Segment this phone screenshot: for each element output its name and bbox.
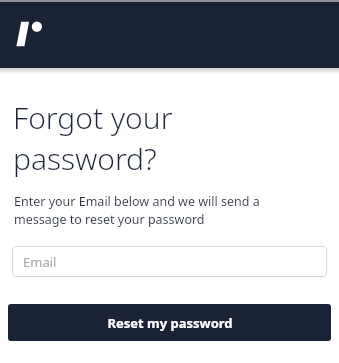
button[interactable]: Email: [12, 246, 327, 277]
staticText: Forgot your password?: [13, 97, 173, 179]
button[interactable]: Reset my password: [8, 304, 331, 341]
staticText: Enter your Email below and we will send …: [14, 193, 260, 228]
staticText: Email: [23, 253, 57, 271]
button[interactable]: Home: [14, 19, 46, 49]
staticText: Reset my password: [107, 314, 233, 332]
